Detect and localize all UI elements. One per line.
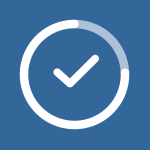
button[interactable]: Task complete, 75 percent xyxy=(0,0,150,150)
